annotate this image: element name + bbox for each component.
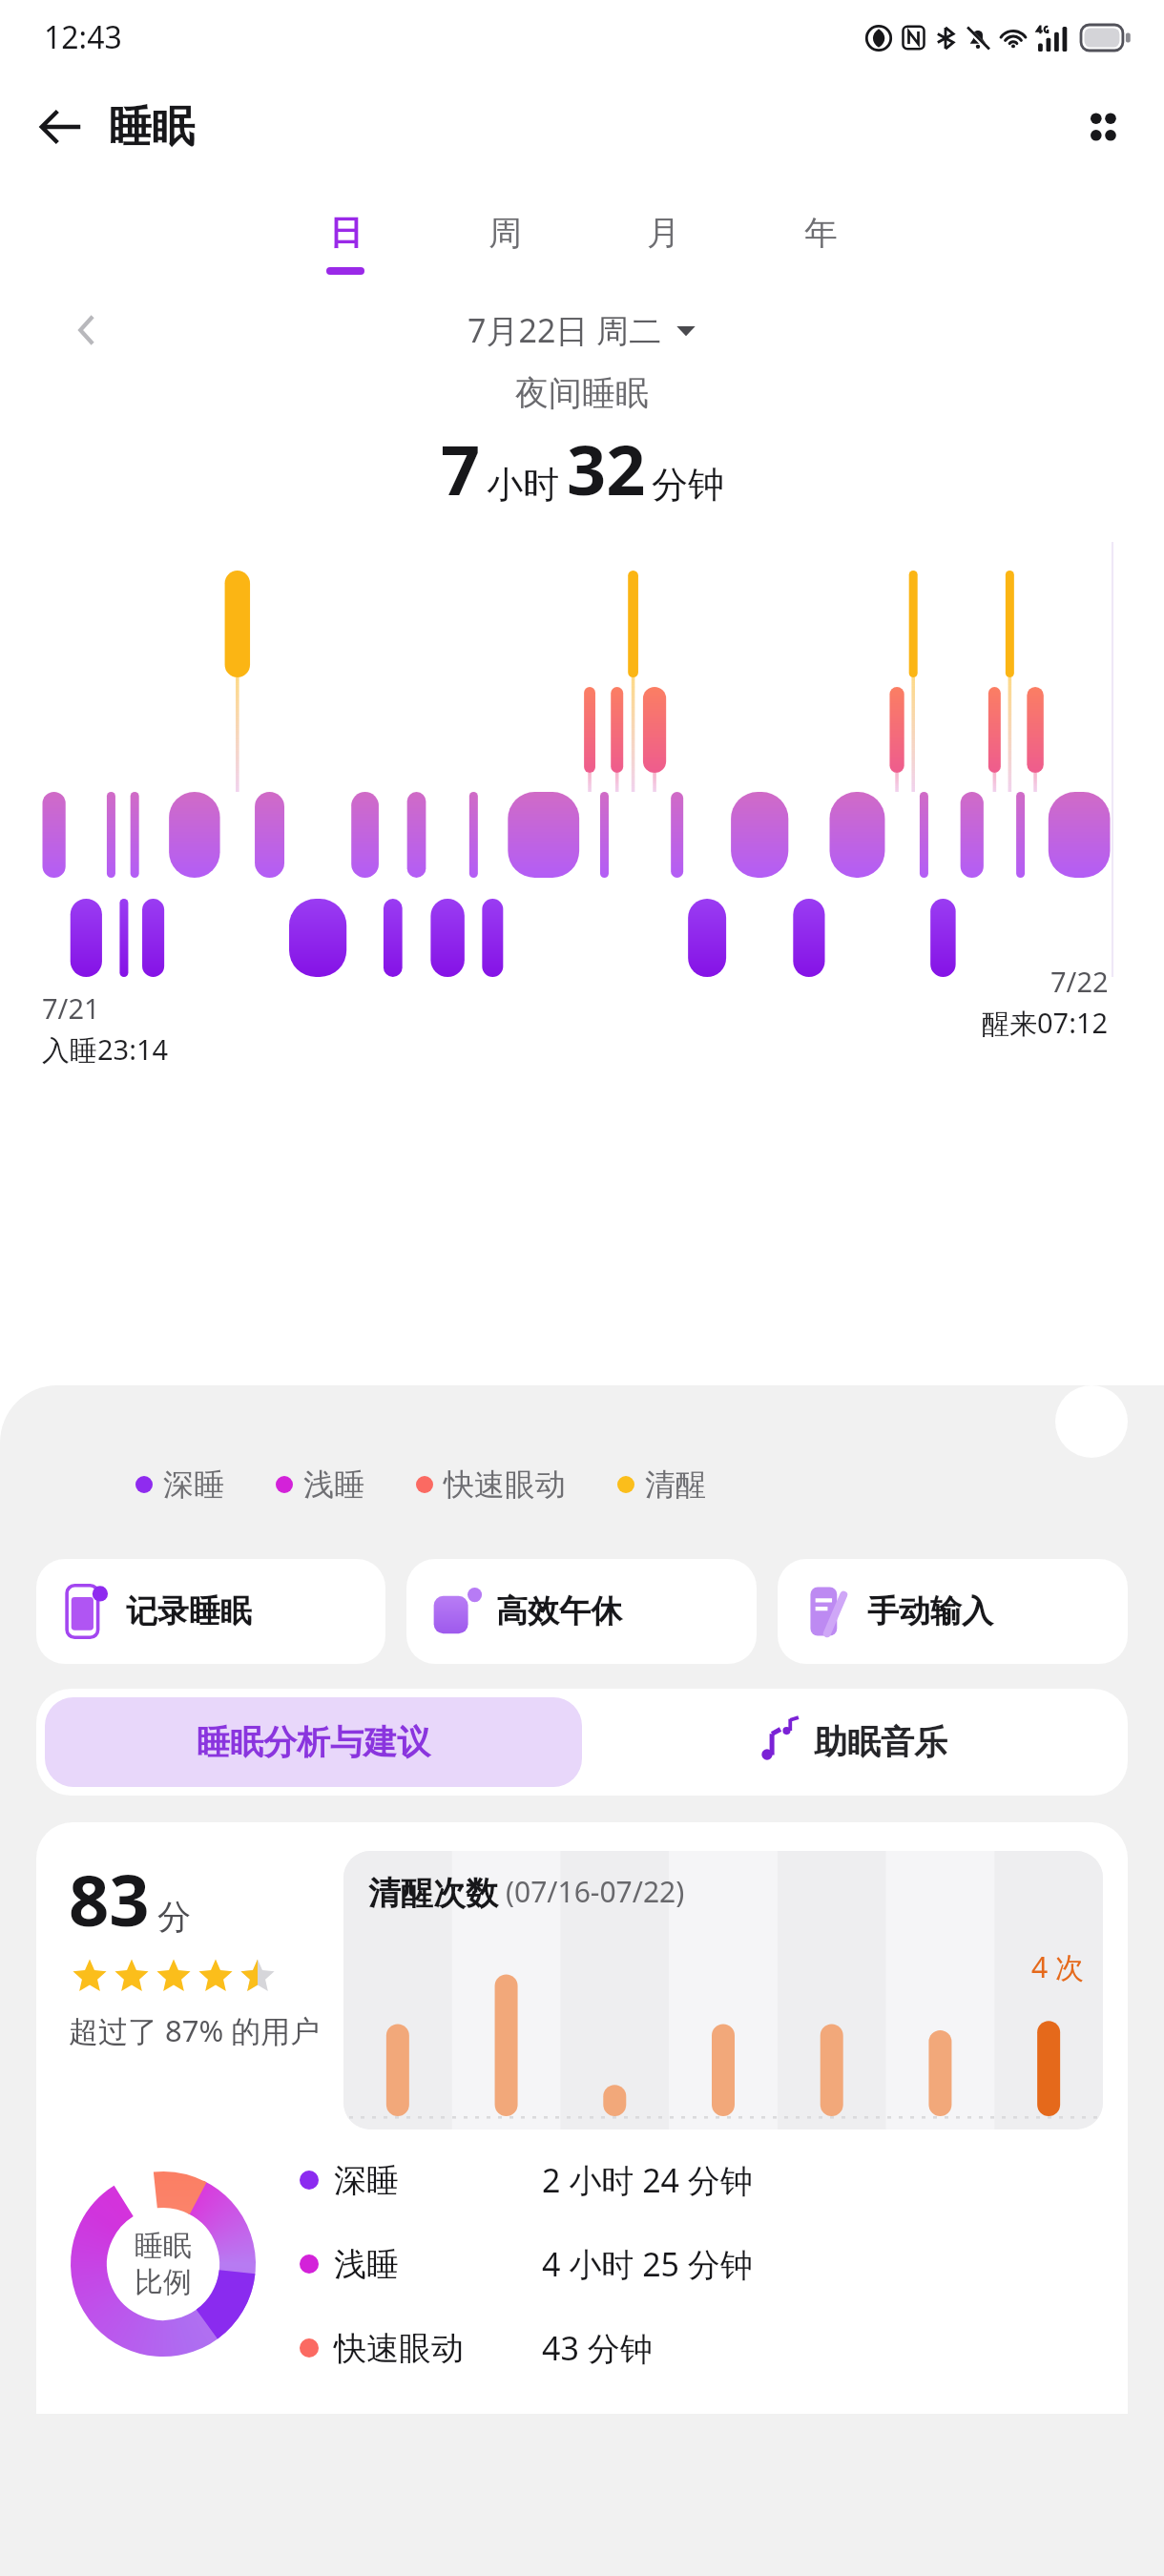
button[interactable]: 更多选项 <box>1067 91 1139 163</box>
staticText: 清醒 <box>645 1465 706 1504</box>
staticText: 手动输入 <box>867 1591 993 1631</box>
staticText: 醒来07:12 <box>982 1004 1109 1042</box>
button[interactable]: 添加睡眠记录 <box>1055 1385 1128 1458</box>
button[interactable]: 记录睡眠 <box>36 1559 385 1664</box>
staticText: 睡眠分析与建议 <box>197 1721 430 1763</box>
button[interactable]: 助眠音乐 <box>582 1697 1119 1787</box>
staticText: 12:43 <box>44 16 122 58</box>
staticText: 记录睡眠 <box>126 1591 252 1631</box>
staticText: 睡眠 <box>109 100 195 155</box>
button[interactable]: 周 <box>477 208 533 279</box>
staticText: 深睡 <box>334 2160 399 2201</box>
button[interactable]: 年 <box>793 208 849 279</box>
staticText: 4 次 <box>1031 1947 1084 1986</box>
staticText: 夜间睡眠 <box>515 372 649 414</box>
staticText: 4 小时 25 分钟 <box>542 2242 753 2286</box>
staticText: 年 <box>804 212 838 254</box>
staticText: 分 <box>157 1896 191 1938</box>
button[interactable]: 高效午休 <box>406 1559 757 1664</box>
staticText: 32 <box>567 422 646 515</box>
staticText: 月 <box>647 212 680 254</box>
staticText: 深睡 <box>163 1465 224 1504</box>
staticText: 分钟 <box>652 462 724 508</box>
staticText: 超过了 87% 的用户 <box>69 2010 321 2050</box>
staticText: 浅睡 <box>334 2244 399 2285</box>
staticText: 周 <box>488 212 522 254</box>
staticText: 小时 <box>487 462 559 508</box>
button[interactable]: 日 <box>315 208 376 279</box>
staticText: 快速眼动 <box>444 1465 566 1504</box>
staticText: 高效午休 <box>496 1591 622 1631</box>
button[interactable]: 手动输入 <box>778 1559 1128 1664</box>
button[interactable]: 前一天 <box>59 302 114 358</box>
staticText: 比例 <box>135 2264 192 2300</box>
staticText: 43 分钟 <box>542 2326 653 2370</box>
staticText: (07/16-07/22) <box>506 1872 685 1911</box>
staticText: 日 <box>329 212 363 254</box>
button[interactable]: 月 <box>635 208 692 279</box>
staticText: 浅睡 <box>303 1465 364 1504</box>
button[interactable]: 返回 <box>25 91 97 163</box>
staticText: 清醒次数 <box>368 1873 498 1914</box>
staticText: 入睡23:14 <box>42 1030 169 1069</box>
button[interactable]: 睡眠分析与建议 <box>45 1697 582 1787</box>
staticText: 快速眼动 <box>334 2328 464 2369</box>
staticText: 2 小时 24 分钟 <box>542 2158 753 2202</box>
staticText: 助眠音乐 <box>814 1721 947 1763</box>
staticText: 7/22 <box>1050 963 1109 1000</box>
staticText: 7/21 <box>42 989 100 1027</box>
staticText: 7 <box>441 422 481 515</box>
staticText: 7月22日 周二 <box>468 308 662 352</box>
staticText: 睡眠 <box>135 2228 192 2264</box>
staticText: 83 <box>69 1851 150 1947</box>
